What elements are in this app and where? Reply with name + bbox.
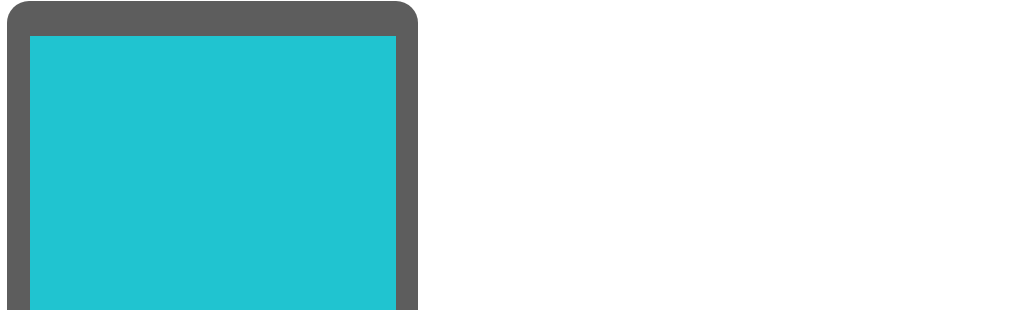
button[interactable]: Device preview: [7, 1, 418, 310]
